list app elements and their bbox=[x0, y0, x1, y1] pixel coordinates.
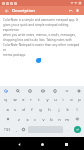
staticText: k bbox=[66, 107, 69, 112]
button[interactable]: Google bbox=[2, 87, 9, 94]
staticText: a bbox=[6, 107, 9, 112]
staticText: , bbox=[16, 127, 17, 132]
button[interactable]: Backspace bbox=[71, 114, 83, 124]
staticText: y bbox=[46, 97, 49, 102]
button[interactable]: u bbox=[51, 94, 59, 104]
button[interactable]: g bbox=[36, 104, 45, 114]
staticText: v bbox=[42, 117, 45, 122]
staticText: i bbox=[62, 97, 64, 102]
button[interactable]: e bbox=[19, 94, 27, 104]
button[interactable]: Enter bbox=[74, 126, 81, 133]
button[interactable]: Back bbox=[14, 139, 24, 149]
button[interactable]: p bbox=[75, 94, 83, 104]
staticText: t bbox=[38, 97, 40, 102]
button[interactable]: y bbox=[43, 94, 51, 104]
button[interactable]: Home bbox=[37, 139, 47, 149]
staticText: g bbox=[39, 107, 42, 112]
staticText: x bbox=[26, 117, 29, 122]
staticText: p bbox=[78, 97, 81, 102]
staticText: q bbox=[4, 97, 7, 102]
button[interactable]: b bbox=[47, 114, 55, 124]
button[interactable]: o bbox=[67, 94, 75, 104]
staticText: memo pad app. bbox=[3, 53, 26, 57]
staticText: m bbox=[65, 117, 69, 122]
staticText: when you write notes, memos, e-mails, me… bbox=[3, 33, 76, 37]
button[interactable]: w bbox=[10, 94, 19, 104]
button[interactable]: n bbox=[55, 114, 63, 124]
staticText: Description bbox=[12, 8, 35, 14]
staticText: z bbox=[18, 117, 20, 122]
button[interactable]: Shift bbox=[1, 114, 14, 124]
button[interactable]: , bbox=[13, 124, 20, 135]
button[interactable]: f bbox=[27, 104, 36, 114]
staticText: c bbox=[34, 117, 36, 122]
button[interactable]: More options bbox=[63, 87, 70, 94]
button[interactable]: Recents bbox=[61, 139, 71, 149]
staticText: j bbox=[58, 107, 60, 112]
button[interactable]: Undo bbox=[67, 7, 74, 14]
button[interactable]: Delete bbox=[74, 7, 81, 14]
button[interactable]: Stickers bbox=[26, 87, 33, 94]
staticText: f bbox=[31, 107, 33, 112]
button[interactable]: Back bbox=[3, 7, 10, 14]
staticText: s bbox=[14, 107, 16, 112]
staticText: . bbox=[67, 127, 68, 132]
button[interactable]: Emoji bbox=[20, 124, 27, 135]
staticText: h bbox=[48, 107, 51, 112]
button[interactable]: a bbox=[3, 104, 11, 114]
button[interactable]: r bbox=[27, 94, 35, 104]
staticText: l bbox=[76, 107, 78, 112]
button[interactable]: GIF bbox=[39, 87, 46, 94]
staticText: b bbox=[50, 117, 53, 122]
staticText: shopping lists and to-do lists. Taking n… bbox=[3, 38, 72, 42]
staticText: n bbox=[58, 117, 61, 122]
staticText: r bbox=[30, 97, 32, 102]
button[interactable]: Search bbox=[14, 87, 21, 94]
button[interactable]: c bbox=[31, 114, 39, 124]
staticText: o bbox=[70, 97, 73, 102]
button[interactable]: q bbox=[1, 94, 10, 104]
button[interactable]: x bbox=[23, 114, 31, 124]
button[interactable]: m bbox=[63, 114, 71, 124]
button[interactable]: l bbox=[72, 104, 81, 114]
staticText: ?123 bbox=[4, 128, 11, 132]
staticText: u bbox=[54, 97, 57, 102]
button[interactable]: t bbox=[35, 94, 43, 104]
staticText: ColorNote Notepad is easier than any oth… bbox=[3, 43, 81, 52]
button[interactable]: s bbox=[11, 104, 19, 114]
staticText: gives you a quick and simple notepad edi… bbox=[3, 23, 81, 32]
button[interactable]: j bbox=[54, 104, 63, 114]
button[interactable]: d bbox=[19, 104, 27, 114]
button[interactable]: Clipboard bbox=[51, 87, 58, 94]
button[interactable]: k bbox=[63, 104, 72, 114]
staticText: d bbox=[22, 107, 25, 112]
button[interactable]: h bbox=[45, 104, 54, 114]
button[interactable]: v bbox=[39, 114, 47, 124]
staticText: w bbox=[13, 97, 17, 102]
button[interactable]: ?123 bbox=[2, 125, 12, 134]
button[interactable]: Settings bbox=[75, 87, 82, 94]
staticText: ColorNote is a simple and awesome notepa… bbox=[3, 18, 79, 22]
button[interactable]: i bbox=[59, 94, 67, 104]
button[interactable]: z bbox=[14, 114, 23, 124]
staticText: e bbox=[22, 97, 25, 102]
